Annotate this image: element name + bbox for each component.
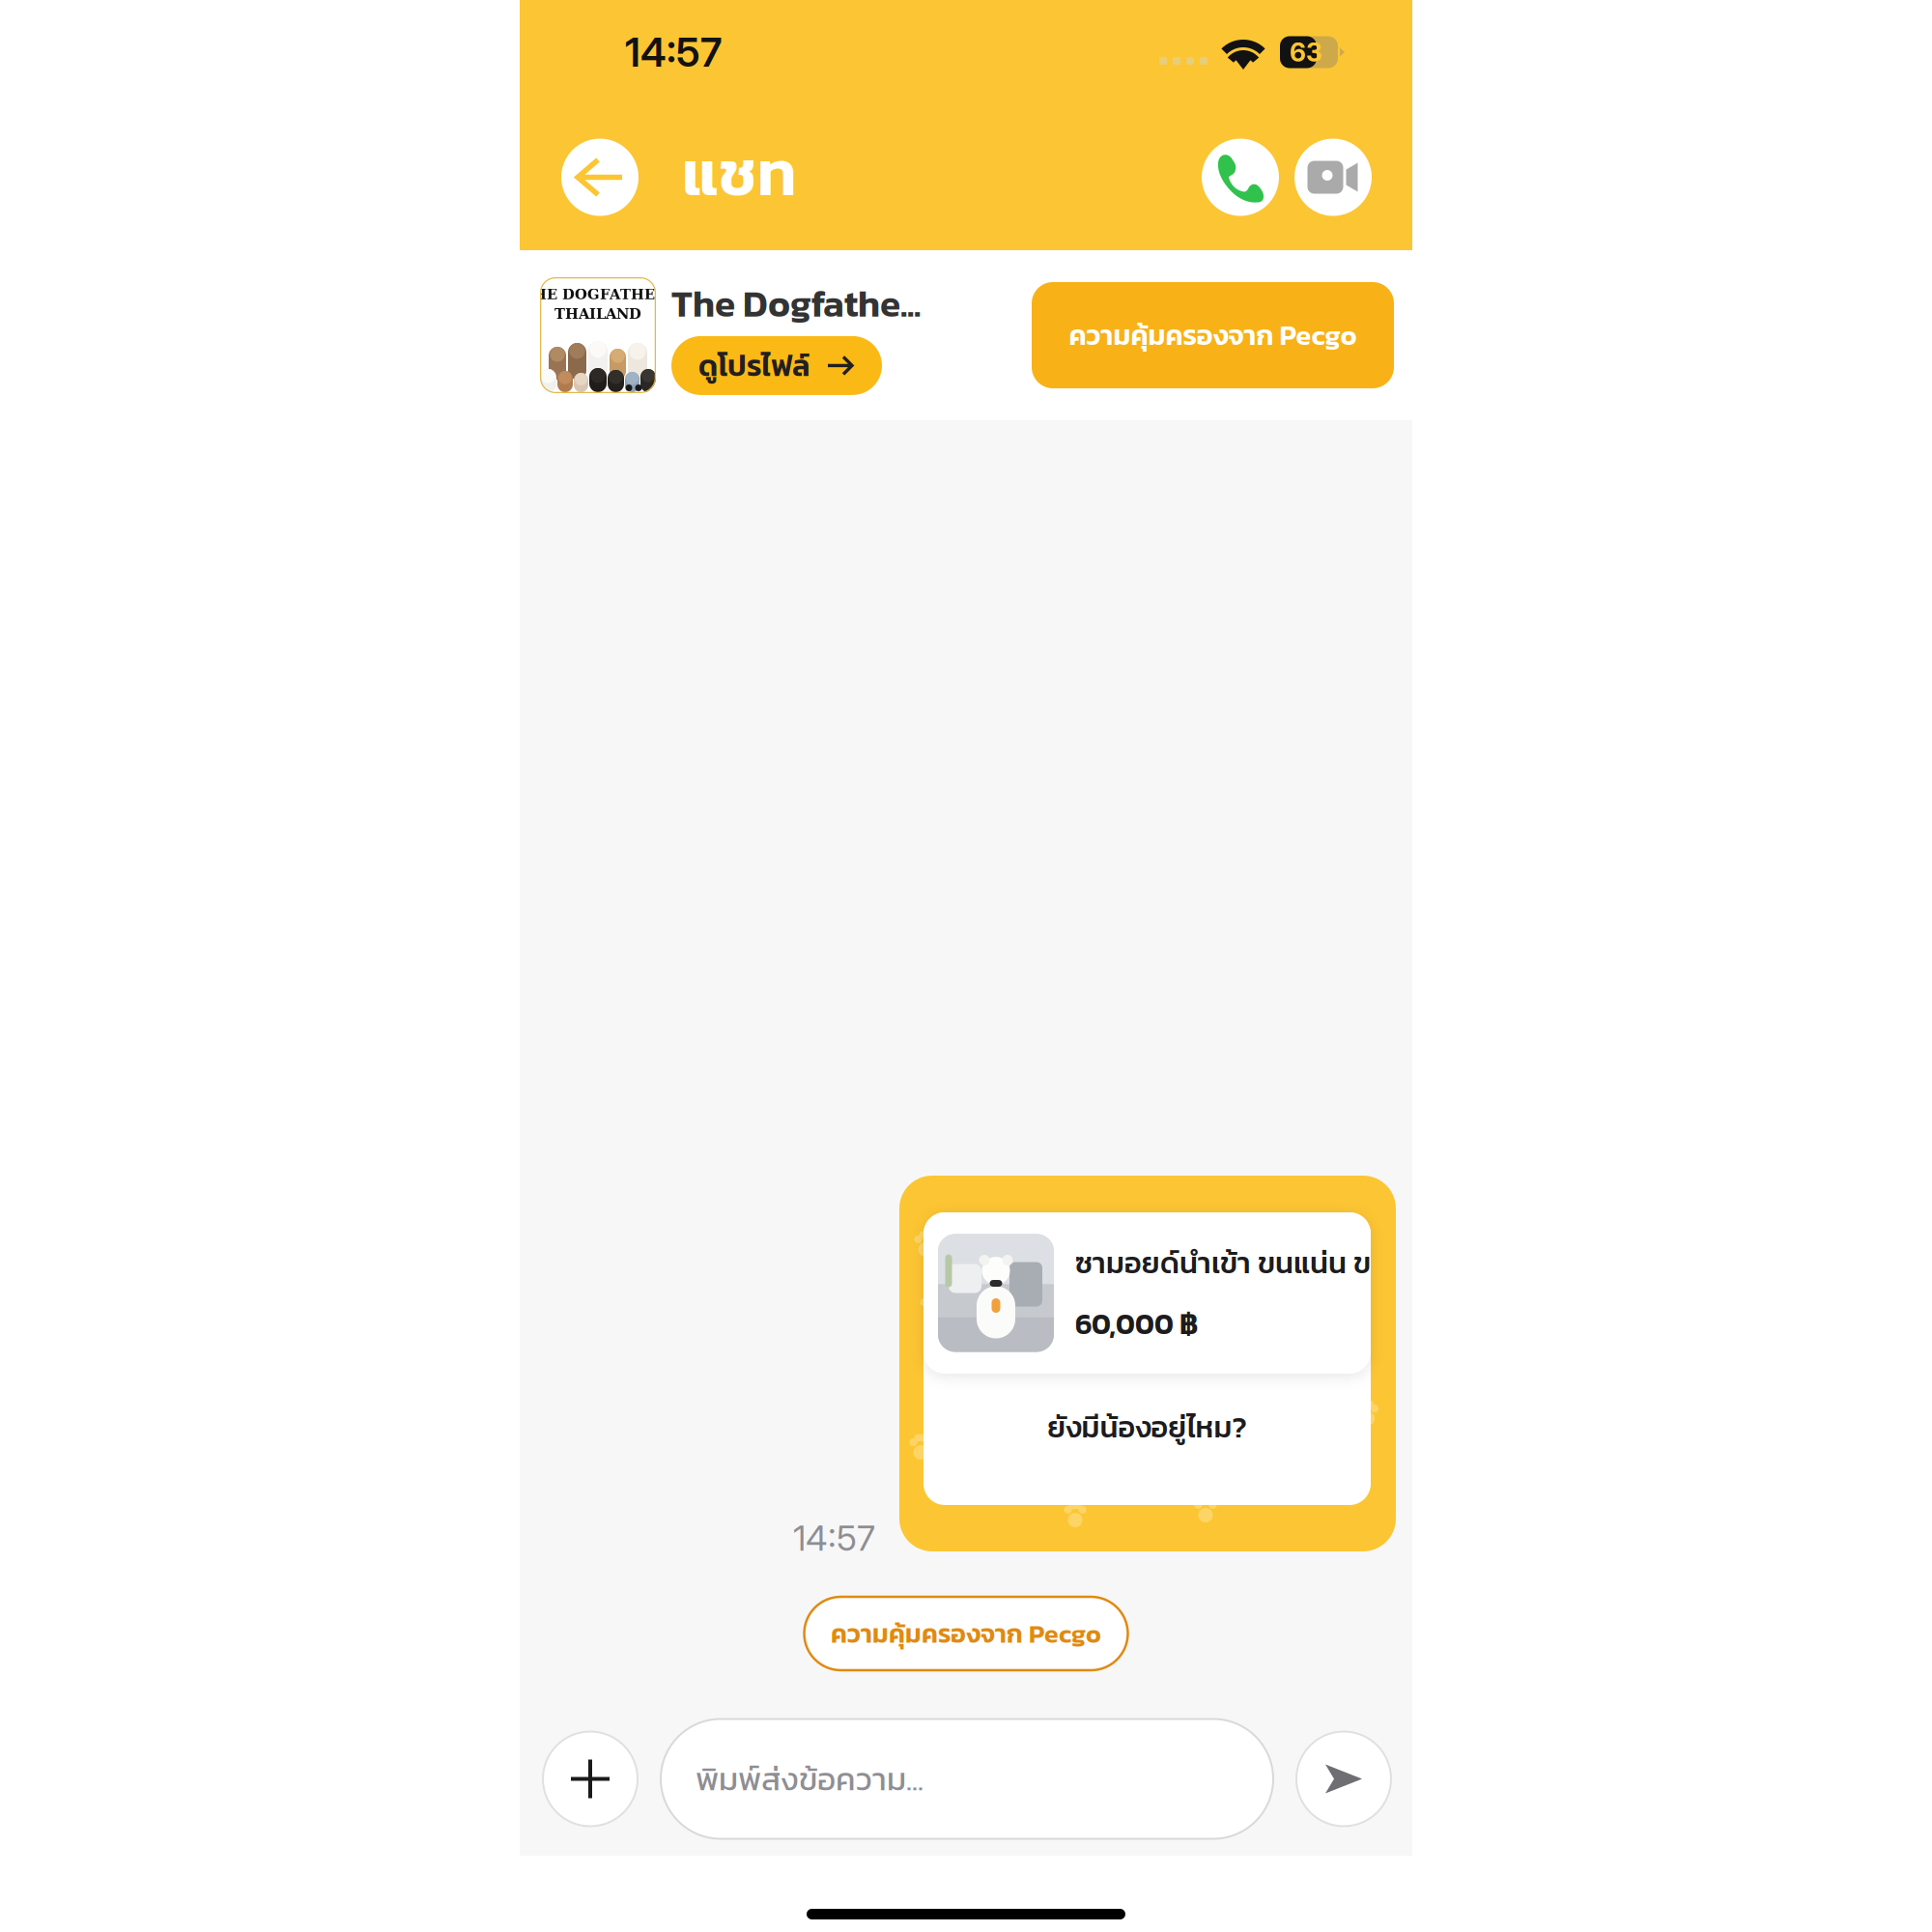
button[interactable]: ความคุ้มครองจาก Pecgo: [1032, 282, 1394, 388]
staticText: ความคุ้มครองจาก Pecgo: [1069, 315, 1357, 356]
button[interactable]: Call: [1202, 139, 1279, 216]
staticText: 14:57: [625, 28, 722, 76]
button[interactable]: Send: [1296, 1732, 1391, 1826]
staticText: ความคุ้มครองจาก Pecgo: [831, 1614, 1101, 1653]
staticText: 63: [1290, 37, 1322, 68]
staticText: 60,000 ฿: [1075, 1302, 1198, 1345]
staticText: ซามอยด์นำเข้า ขนแน่น ข: [1075, 1241, 1371, 1285]
staticText: 14:57: [793, 1517, 875, 1559]
button[interactable]: ดูโปรไฟล์: [671, 336, 882, 395]
staticText: The Dogfathe...: [671, 275, 921, 331]
staticText: แชท: [682, 126, 797, 220]
staticText: ยังมีน้องอยู่ไหม?: [1048, 1405, 1247, 1449]
button[interactable]: Video call: [1294, 139, 1372, 216]
button[interactable]: Add attachment: [543, 1732, 638, 1826]
staticText: THAILAND: [554, 305, 641, 322]
staticText: HE DOGFATHER: [533, 286, 667, 303]
button[interactable]: ความคุ้มครองจาก Pecgo: [804, 1597, 1128, 1670]
button[interactable]: Back: [561, 139, 639, 216]
staticText: ดูโปรไฟล์: [698, 343, 810, 388]
staticText: พิมพ์ส่งข้อความ...: [696, 1755, 923, 1803]
